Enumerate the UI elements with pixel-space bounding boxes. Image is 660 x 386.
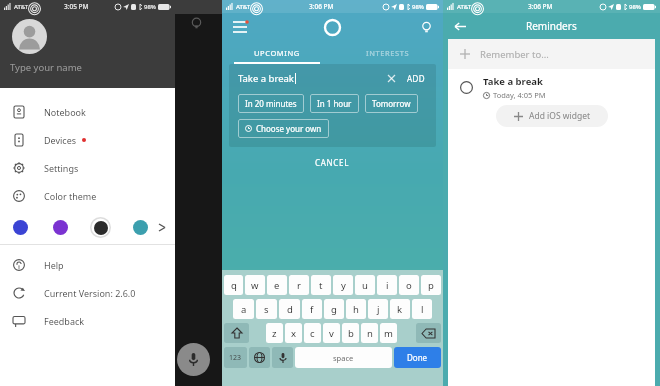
button[interactable]: Help	[0, 251, 175, 279]
button[interactable]: key	[224, 323, 249, 343]
staticText: Help	[44, 259, 64, 271]
button[interactable]: Take a break	[448, 69, 655, 105]
button[interactable]: Feedback	[0, 307, 175, 335]
button[interactable]: Add iOS widget	[496, 105, 608, 127]
staticText: x	[291, 327, 297, 340]
button[interactable]: k	[390, 299, 410, 319]
staticText: Notebook	[44, 106, 86, 118]
staticText: Color theme	[44, 190, 97, 202]
button[interactable]: ADD	[405, 73, 427, 84]
button[interactable]: f	[302, 299, 322, 319]
button[interactable]: g	[324, 299, 344, 319]
staticText: h	[353, 303, 359, 316]
button[interactable]: INTERESTS	[332, 41, 443, 64]
button[interactable]: Devices	[0, 126, 175, 154]
button[interactable]: Color theme	[0, 182, 175, 210]
button[interactable]: In 1 hour	[310, 94, 359, 113]
button[interactable]	[12, 19, 47, 54]
staticText: AT&T	[236, 3, 251, 11]
button[interactable]: h	[346, 299, 366, 319]
button[interactable]: Voice input	[177, 343, 210, 376]
staticText: INTERESTS	[366, 48, 410, 58]
staticText: l	[421, 303, 424, 316]
button[interactable]: o	[399, 275, 419, 295]
button[interactable]: More colors	[153, 219, 169, 235]
staticText: Reminders	[526, 19, 577, 33]
staticText: d	[287, 303, 293, 316]
button[interactable]: Current Version: 2.6.0	[0, 279, 175, 307]
button[interactable]: x	[285, 323, 302, 343]
button[interactable]: key	[224, 347, 247, 368]
staticText: Remember to...	[480, 48, 549, 61]
button[interactable]: r	[289, 275, 309, 295]
button[interactable]: Done	[394, 347, 441, 368]
button[interactable]: d	[279, 299, 300, 319]
button[interactable]: Menu	[231, 18, 249, 36]
staticText: q	[231, 279, 237, 292]
button[interactable]: Choose your own	[238, 119, 329, 138]
button[interactable]: l	[412, 299, 432, 319]
button[interactable]: z	[266, 323, 283, 343]
button[interactable]	[130, 217, 151, 238]
button[interactable]: s	[256, 299, 277, 319]
staticText: 98%	[412, 3, 424, 11]
staticText: ADD	[407, 73, 425, 84]
staticText: 123	[229, 353, 242, 363]
button[interactable]: In 20 minutes	[238, 94, 304, 113]
button[interactable]: j	[368, 299, 388, 319]
staticText: CANCEL	[315, 157, 350, 168]
button[interactable]: c	[304, 323, 321, 343]
button[interactable]: q	[224, 275, 243, 295]
button[interactable]: Tomorrow	[365, 94, 418, 113]
button[interactable]: u	[355, 275, 375, 295]
staticText: v	[329, 327, 334, 340]
staticText: Take a break	[483, 75, 543, 88]
staticText: z	[272, 327, 277, 340]
button[interactable]: a	[233, 299, 254, 319]
button[interactable]: UPCOMING	[222, 41, 332, 64]
button[interactable]: i	[377, 275, 397, 295]
staticText: Feedback	[44, 315, 85, 327]
button[interactable]: y	[333, 275, 353, 295]
button[interactable]: t	[311, 275, 331, 295]
button[interactable]: Clear	[383, 70, 399, 86]
staticText: w	[251, 279, 259, 292]
staticText: AT&T	[14, 3, 29, 11]
button[interactable]: w	[245, 275, 265, 295]
button[interactable]: Remember to...	[448, 39, 655, 69]
button[interactable]: e	[267, 275, 287, 295]
button[interactable]: m	[380, 323, 397, 343]
staticText: g	[331, 303, 337, 316]
staticText: c	[310, 327, 315, 340]
button[interactable]: Notebook	[0, 98, 175, 126]
button[interactable]: CANCEL	[222, 147, 443, 177]
staticText: k	[397, 303, 403, 316]
button[interactable]	[90, 217, 111, 238]
staticText: f	[310, 303, 314, 316]
button[interactable]: p	[421, 275, 441, 295]
button[interactable]: n	[361, 323, 378, 343]
staticText: y	[341, 279, 346, 292]
staticText: 3:06 PM	[528, 2, 553, 11]
staticText: Today, 4:05 PM	[493, 90, 546, 100]
staticText: 3:06 PM	[309, 2, 334, 11]
button[interactable]: key	[416, 323, 441, 343]
staticText: space	[333, 353, 354, 363]
button[interactable]: b	[342, 323, 359, 343]
staticText: 98%	[144, 3, 156, 11]
staticText: Add iOS widget	[529, 110, 590, 122]
staticText: Tomorrow	[372, 98, 411, 109]
button[interactable]: Settings	[0, 154, 175, 182]
button[interactable]: key	[249, 347, 270, 368]
staticText: Done	[407, 352, 428, 363]
staticText: 98%	[629, 3, 641, 11]
staticText: u	[362, 279, 368, 292]
button[interactable]	[10, 217, 31, 238]
button[interactable]: key	[272, 347, 293, 368]
button[interactable]: space	[295, 347, 392, 368]
button[interactable]: Back	[452, 18, 468, 34]
staticText: AT&T	[457, 3, 472, 11]
button[interactable]	[50, 217, 71, 238]
button[interactable]: v	[323, 323, 340, 343]
button[interactable]: Ideas	[418, 19, 434, 35]
